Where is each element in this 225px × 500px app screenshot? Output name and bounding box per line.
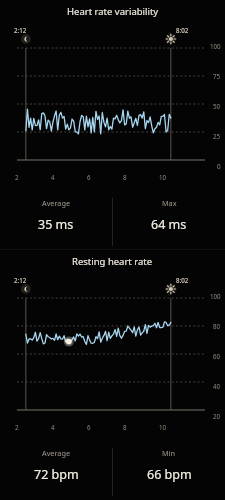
staticText: 40 <box>213 382 221 390</box>
staticText: 10 <box>159 423 167 431</box>
staticText: 100 <box>210 42 221 50</box>
staticText: Min <box>162 448 176 458</box>
other: Heart rate variability graph <box>0 26 225 186</box>
staticText: 4 <box>51 423 55 431</box>
staticText: 72 bpm <box>34 466 79 483</box>
staticText: Resting heart rate <box>72 255 153 268</box>
staticText: 80 <box>213 322 221 330</box>
staticText: 0 <box>217 162 221 170</box>
staticText: 66 bpm <box>147 466 192 483</box>
staticText: Average <box>42 198 71 208</box>
staticText: 2 <box>15 423 19 431</box>
staticText: 100 <box>210 292 221 300</box>
button[interactable]: Min <box>113 448 225 498</box>
button[interactable]: Heart rate variability <box>0 0 225 249</box>
staticText: Heart rate variability <box>67 5 159 18</box>
staticText: 2 <box>15 173 19 181</box>
staticText: Average <box>42 448 71 458</box>
staticText: 8 <box>123 173 127 181</box>
staticText: 6 <box>87 173 91 181</box>
staticText: 35 ms <box>38 216 74 233</box>
other: Resting heart rate graph <box>0 276 225 436</box>
button[interactable]: Average <box>0 448 112 498</box>
staticText: 8 <box>123 423 127 431</box>
staticText: 8:02 <box>176 276 189 284</box>
staticText: 10 <box>159 173 167 181</box>
button[interactable]: Average <box>0 198 112 248</box>
staticText: 2:12 <box>14 276 27 284</box>
staticText: 75 <box>213 72 221 80</box>
button[interactable]: Max <box>113 198 225 248</box>
button[interactable]: Resting heart rate <box>0 250 225 500</box>
staticText: 20 <box>213 412 221 420</box>
staticText: Max <box>162 198 177 208</box>
staticText: 64 ms <box>151 216 187 233</box>
staticText: 50 <box>213 102 221 110</box>
staticText: 60 <box>213 352 221 360</box>
staticText: 6 <box>87 423 91 431</box>
staticText: 2:12 <box>14 26 27 34</box>
staticText: 4 <box>51 173 55 181</box>
staticText: 25 <box>213 132 221 140</box>
staticText: 8:02 <box>176 26 189 34</box>
